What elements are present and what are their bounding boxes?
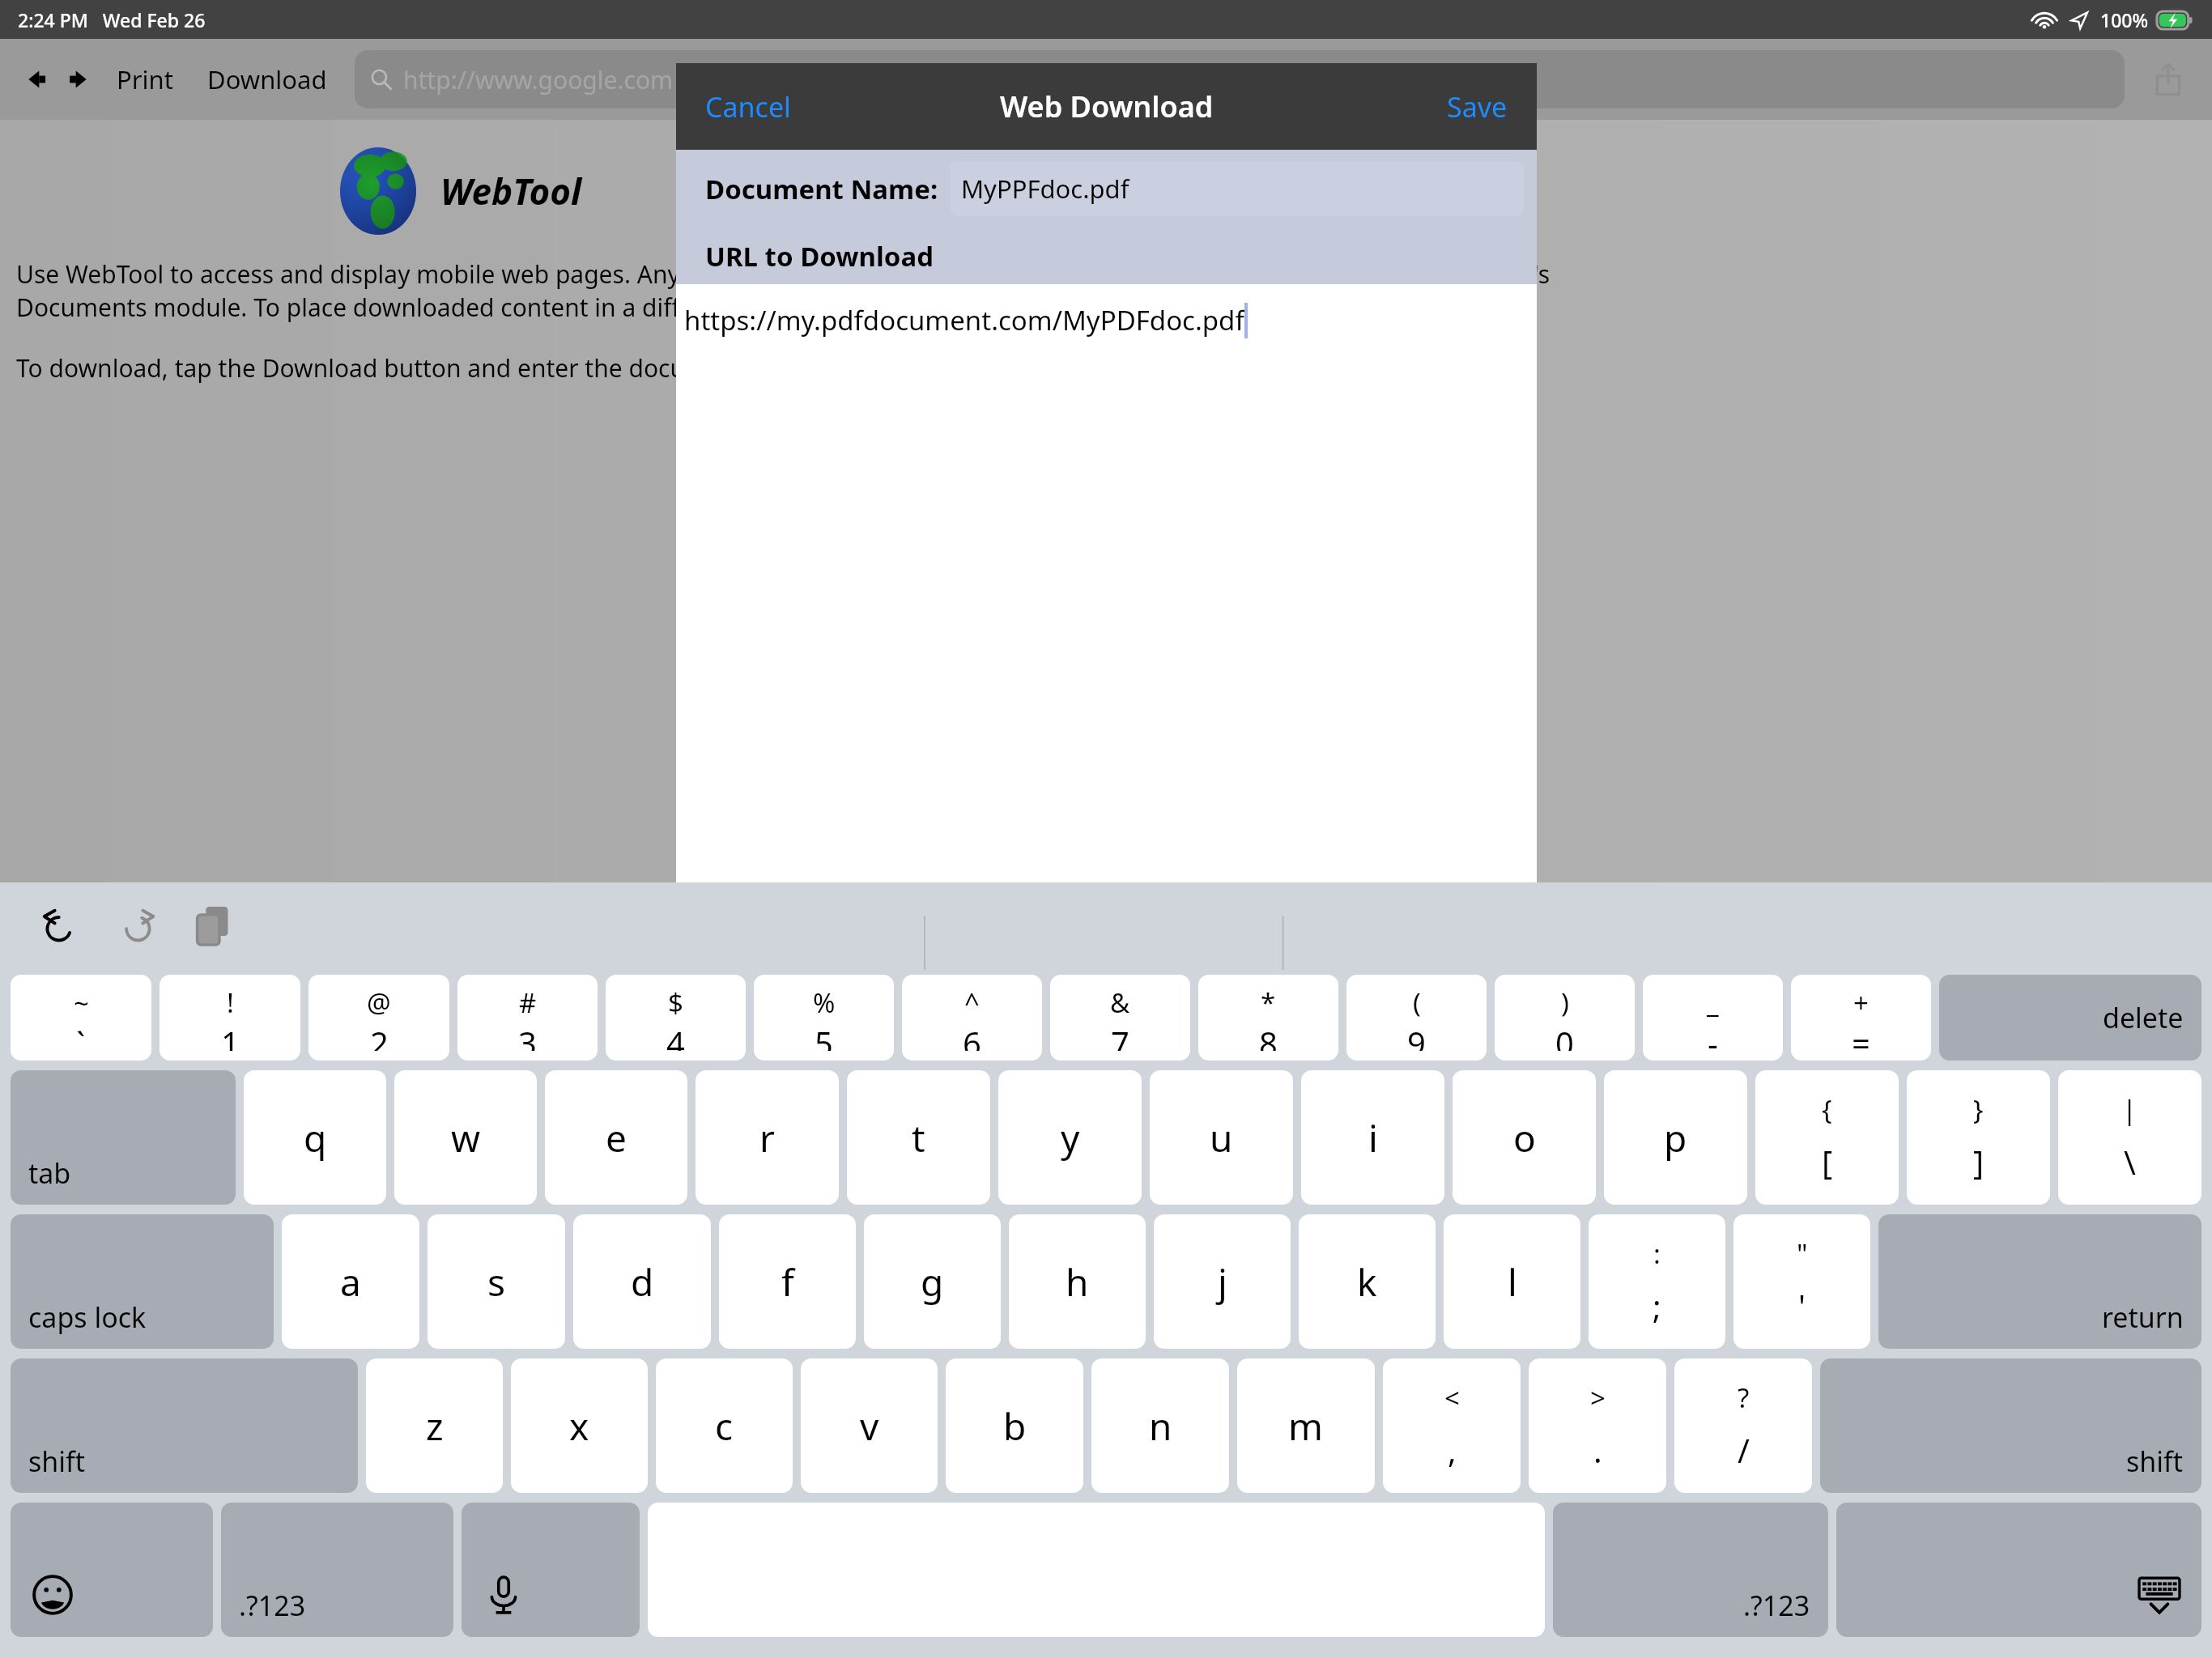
button[interactable]: ^ <box>902 975 1042 1061</box>
button[interactable]: o <box>1453 1070 1596 1205</box>
button[interactable]: Emoji <box>11 1503 213 1637</box>
button[interactable]: { <box>1755 1070 1899 1205</box>
button[interactable]: .?123 <box>1553 1503 1828 1637</box>
button[interactable]: j <box>1154 1214 1291 1349</box>
button[interactable]: ~ <box>11 975 151 1061</box>
button[interactable]: : <box>1589 1214 1725 1349</box>
button[interactable]: + <box>1791 975 1931 1061</box>
button[interactable]: " <box>1733 1214 1870 1349</box>
button[interactable]: _ <box>1643 975 1783 1061</box>
staticText: \ <box>2124 1140 2136 1184</box>
button[interactable]: https://my.pdfdocument.com/MyPDFdoc.pdf <box>676 284 1537 882</box>
button[interactable]: Dictation <box>462 1503 640 1637</box>
button[interactable]: Share <box>2146 57 2191 102</box>
staticText: $ <box>668 984 683 1021</box>
button[interactable]: .?123 <box>221 1503 453 1637</box>
button[interactable]: h <box>1009 1214 1146 1349</box>
button[interactable]: s <box>428 1214 565 1349</box>
button[interactable]: http://www.google.com <box>355 50 2125 108</box>
staticText: x <box>569 1401 589 1452</box>
button[interactable]: b <box>946 1358 1083 1493</box>
staticText: ; <box>1653 1284 1661 1328</box>
button[interactable]: ? <box>1674 1358 1812 1493</box>
button[interactable]: & <box>1050 975 1190 1061</box>
button[interactable]: a <box>282 1214 419 1349</box>
staticText: j <box>1218 1256 1227 1307</box>
staticText: 3 <box>518 1021 537 1051</box>
button[interactable]: # <box>457 975 598 1061</box>
button[interactable]: Back <box>21 62 55 96</box>
staticText: * <box>1261 984 1276 1021</box>
staticText: y <box>1061 1112 1080 1163</box>
button[interactable]: w <box>394 1070 537 1205</box>
staticText: .?123 <box>239 1587 306 1624</box>
button[interactable]: Download <box>199 56 335 103</box>
button[interactable]: d <box>573 1214 711 1349</box>
button[interactable]: * <box>1198 975 1338 1061</box>
button[interactable]: Hide keyboard <box>1836 1503 2201 1637</box>
button[interactable]: shift <box>11 1358 358 1493</box>
staticText: Download <box>207 62 327 96</box>
button[interactable]: return <box>1878 1214 2201 1349</box>
button[interactable]: c <box>656 1358 793 1493</box>
staticText: ` <box>76 1021 86 1051</box>
staticText: & <box>1110 984 1130 1021</box>
button[interactable]: MyPPFdoc.pdf <box>950 161 1524 216</box>
button[interactable]: ! <box>160 975 300 1061</box>
button[interactable]: z <box>366 1358 503 1493</box>
staticText: ] <box>1973 1140 1984 1184</box>
button[interactable]: y <box>998 1070 1142 1205</box>
button[interactable]: Save <box>1418 77 1537 137</box>
button[interactable]: q <box>244 1070 386 1205</box>
staticText: f <box>781 1256 794 1307</box>
button[interactable]: @ <box>308 975 449 1061</box>
staticText: 4 <box>666 1021 685 1051</box>
staticText: b <box>1003 1401 1027 1452</box>
staticText: Web Download <box>1000 87 1214 126</box>
staticText: / <box>1738 1428 1750 1472</box>
staticText: z <box>426 1401 444 1452</box>
button[interactable]: } <box>1907 1070 2050 1205</box>
button[interactable]: Forward <box>60 62 94 96</box>
button[interactable]: v <box>801 1358 938 1493</box>
button[interactable]: f <box>719 1214 856 1349</box>
button[interactable]: $ <box>606 975 746 1061</box>
staticText: u <box>1210 1112 1233 1163</box>
button[interactable]: Undo <box>36 901 86 951</box>
button[interactable]: ) <box>1495 975 1635 1061</box>
button[interactable]: % <box>754 975 894 1061</box>
button[interactable]: ( <box>1346 975 1487 1061</box>
button[interactable]: Cancel <box>676 77 820 137</box>
button[interactable]: caps lock <box>11 1214 274 1349</box>
button[interactable]: shift <box>1820 1358 2201 1493</box>
button[interactable]: g <box>864 1214 1001 1349</box>
staticText: t <box>912 1112 925 1163</box>
button[interactable]: p <box>1604 1070 1747 1205</box>
button[interactable]: x <box>511 1358 648 1493</box>
button[interactable]: Redo <box>112 901 162 951</box>
button[interactable]: | <box>2058 1070 2201 1205</box>
staticText: Save <box>1447 88 1508 125</box>
button[interactable]: i <box>1301 1070 1444 1205</box>
button[interactable]: t <box>847 1070 990 1205</box>
button[interactable]: > <box>1529 1358 1666 1493</box>
button[interactable]: tab <box>11 1070 236 1205</box>
button[interactable]: n <box>1091 1358 1229 1493</box>
button[interactable]: l <box>1444 1214 1580 1349</box>
staticText: Cancel <box>705 88 791 125</box>
staticText: + <box>1853 984 1869 1021</box>
button[interactable]: e <box>545 1070 687 1205</box>
button[interactable]: delete <box>1939 975 2201 1061</box>
button[interactable]: k <box>1299 1214 1436 1349</box>
button[interactable]: u <box>1150 1070 1293 1205</box>
button[interactable]: m <box>1237 1358 1375 1493</box>
button[interactable]: r <box>696 1070 839 1205</box>
button[interactable]: < <box>1383 1358 1521 1493</box>
staticText: _ <box>1707 984 1719 1021</box>
button[interactable]: Print <box>108 56 181 103</box>
staticText: 9 <box>1407 1021 1426 1051</box>
staticText: 1 <box>221 1021 240 1051</box>
staticText: w <box>451 1112 481 1163</box>
button[interactable]: Paste <box>188 901 238 951</box>
